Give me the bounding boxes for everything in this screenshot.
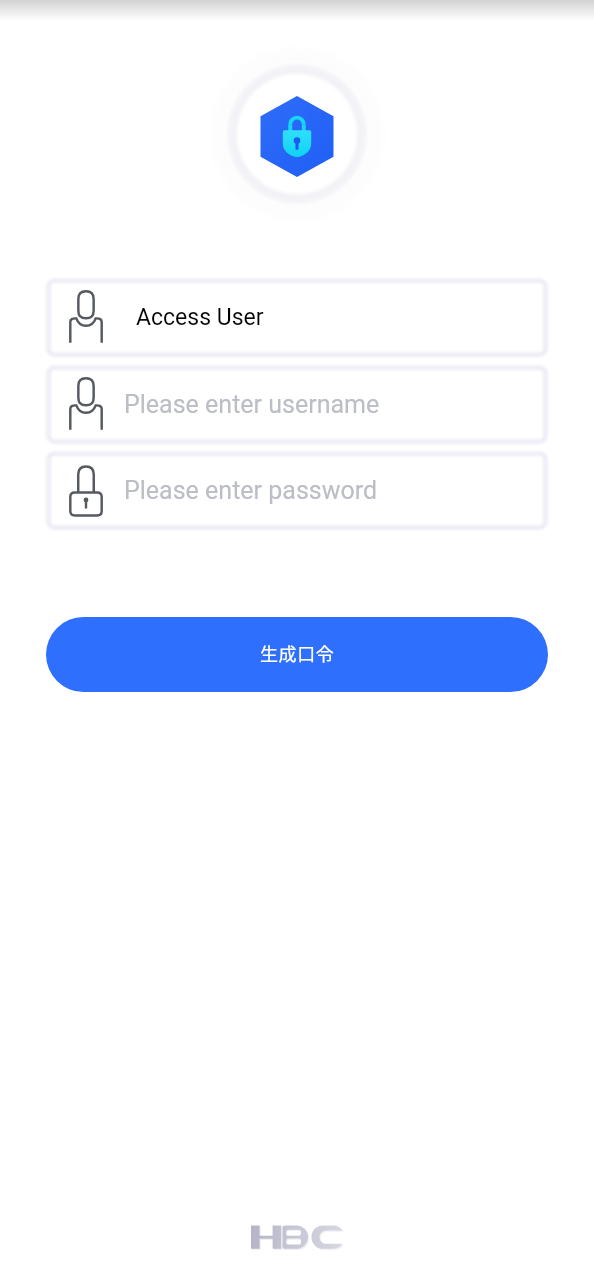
button[interactable]: Please enter username (48, 367, 546, 442)
button[interactable]: Please enter password (48, 453, 546, 528)
staticText: Access User (136, 304, 264, 331)
staticText: 生成口令 (260, 640, 335, 666)
button[interactable]: Access User (48, 280, 546, 355)
staticText: Please enter username (124, 390, 380, 419)
staticText: Please enter password (124, 476, 378, 505)
button[interactable]: 生成口令 (46, 617, 548, 692)
